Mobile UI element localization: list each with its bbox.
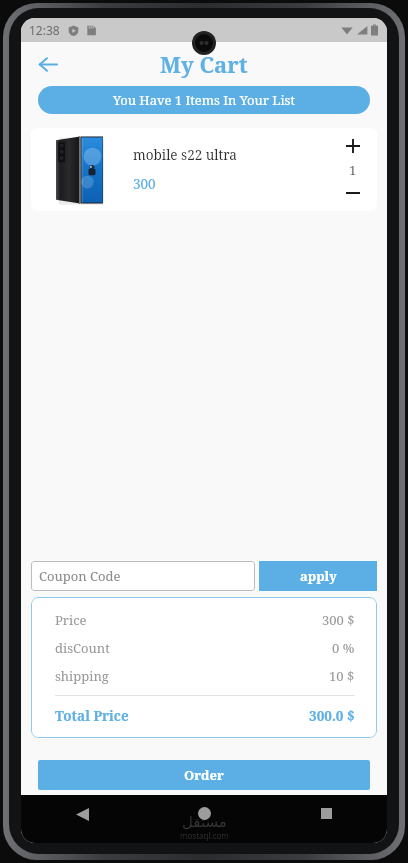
staticText: 0 %: [332, 639, 355, 657]
staticText: 1: [349, 161, 357, 179]
button[interactable]: Recent apps: [265, 795, 387, 843]
button[interactable]: You Have 1 Items In Your List: [38, 86, 370, 114]
staticText: You Have 1 Items In Your List: [113, 91, 296, 109]
button[interactable]: Back: [21, 795, 143, 843]
staticText: My Cart: [160, 49, 248, 79]
button[interactable]: Order: [38, 760, 370, 790]
staticText: 300: [133, 175, 156, 193]
staticText: Total Price: [55, 707, 129, 725]
staticText: mobile s22 ultra: [133, 146, 237, 164]
staticText: 12:38: [29, 22, 60, 38]
staticText: apply: [300, 567, 337, 585]
button[interactable]: mobile s22 ultra: [31, 128, 377, 211]
staticText: Coupon Code: [39, 567, 121, 585]
button[interactable]: Back: [30, 46, 66, 82]
button[interactable]: Decrease quantity: [344, 184, 362, 202]
button[interactable]: Home: [143, 795, 265, 843]
button[interactable]: Increase quantity: [344, 137, 362, 155]
staticText: Order: [184, 766, 224, 784]
staticText: mostaql.com: [180, 830, 229, 841]
staticText: مستقل: [182, 813, 227, 830]
staticText: 10 $: [329, 667, 355, 685]
staticText: shipping: [55, 667, 109, 685]
staticText: disCount: [55, 639, 110, 657]
staticText: 300 $: [322, 611, 355, 629]
staticText: 300.0 $: [309, 707, 355, 725]
button[interactable]: Coupon Code: [31, 561, 255, 591]
button[interactable]: apply: [259, 561, 377, 591]
staticText: Price: [55, 611, 87, 629]
